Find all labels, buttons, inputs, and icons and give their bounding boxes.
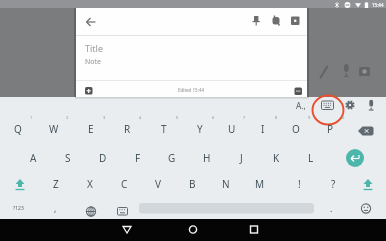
button[interactable]: S (51, 144, 85, 171)
button[interactable] (247, 11, 265, 29)
staticText: G (168, 151, 176, 165)
staticText: ? (331, 177, 336, 191)
staticText: 8 (275, 115, 278, 120)
button[interactable]: M (243, 171, 277, 197)
button[interactable]: . (320, 197, 342, 219)
staticText: L (308, 151, 314, 165)
button[interactable] (342, 98, 360, 113)
staticText: Q (14, 122, 22, 136)
button[interactable]: Title (85, 41, 205, 54)
button[interactable]: B (175, 171, 209, 197)
staticText: T (161, 122, 167, 136)
button[interactable] (356, 173, 380, 195)
button[interactable]: Q (1, 114, 35, 144)
staticText: R (124, 122, 131, 136)
staticText: Z (53, 177, 59, 191)
staticText: A (30, 151, 37, 165)
staticText: P (327, 122, 334, 136)
staticText: X (87, 177, 93, 191)
button[interactable] (318, 98, 338, 113)
button[interactable]: ? (316, 171, 350, 197)
button[interactable]: L (294, 144, 328, 171)
button[interactable] (286, 11, 304, 29)
button[interactable] (355, 200, 377, 219)
button[interactable]: P (313, 114, 347, 144)
button[interactable] (363, 98, 379, 113)
button[interactable]: T (147, 114, 181, 144)
button[interactable]: Z (39, 171, 73, 197)
button[interactable] (111, 200, 133, 219)
button[interactable] (8, 173, 32, 195)
button[interactable]: R (110, 114, 144, 144)
button[interactable]: A (16, 144, 50, 171)
staticText: 0 (342, 115, 345, 120)
button[interactable] (290, 83, 306, 97)
button[interactable]: F (121, 144, 155, 171)
button[interactable]: A., (294, 99, 308, 111)
staticText: Y (197, 122, 203, 136)
staticText: C (121, 177, 128, 191)
staticText: J (240, 151, 243, 165)
staticText: N (222, 177, 230, 191)
staticText: H (203, 151, 211, 165)
staticText: M (255, 177, 265, 191)
staticText: F (135, 151, 141, 165)
staticText: 4 (139, 115, 142, 120)
staticText: 3 (103, 115, 106, 120)
staticText: . (330, 202, 333, 214)
button[interactable]: , (44, 197, 66, 219)
staticText: Title (85, 42, 103, 54)
staticText: Edited 15:44 (178, 87, 205, 93)
staticText: ! (298, 177, 301, 191)
button[interactable]: N (209, 171, 243, 197)
button[interactable]: E (74, 114, 108, 144)
button[interactable] (139, 200, 314, 219)
button[interactable] (80, 200, 102, 219)
staticText: B (189, 177, 196, 191)
staticText: 9 (308, 115, 311, 120)
staticText: E (88, 122, 94, 136)
button[interactable] (82, 12, 100, 30)
staticText: D (99, 151, 107, 165)
staticText: K (273, 151, 280, 165)
staticText: O (292, 122, 300, 136)
staticText: 5 (176, 115, 179, 120)
staticText: U (228, 122, 236, 136)
staticText: Note (85, 57, 102, 67)
staticText: 15:44 (372, 2, 384, 8)
staticText: 1 (30, 115, 33, 120)
button[interactable]: W (37, 114, 71, 144)
button[interactable] (352, 120, 378, 142)
staticText: 6 (212, 115, 215, 120)
button[interactable] (80, 83, 96, 97)
button[interactable]: I (246, 114, 280, 144)
staticText: V (155, 177, 161, 191)
button[interactable]: C (107, 171, 141, 197)
button[interactable] (179, 220, 207, 240)
staticText: S (65, 151, 71, 165)
button[interactable]: Note (85, 57, 205, 67)
button[interactable]: K (259, 144, 293, 171)
button[interactable]: ! (282, 171, 316, 197)
button[interactable]: X (73, 171, 107, 197)
button[interactable]: U (215, 114, 249, 144)
staticText: W (49, 122, 59, 136)
button[interactable]: O (279, 114, 313, 144)
staticText: 7 (243, 115, 246, 120)
staticText: A., (296, 100, 306, 111)
button[interactable] (240, 220, 268, 240)
button[interactable] (344, 147, 366, 169)
staticText: I (261, 122, 265, 136)
button[interactable]: D (86, 144, 120, 171)
button[interactable]: V (141, 171, 175, 197)
button[interactable]: ?123 (2, 197, 34, 219)
button[interactable]: G (155, 144, 189, 171)
button[interactable] (267, 11, 285, 29)
button[interactable]: H (190, 144, 224, 171)
staticText: ?123 (13, 205, 24, 212)
button[interactable] (113, 220, 141, 240)
button[interactable]: J (224, 144, 258, 171)
button[interactable]: Y (183, 114, 217, 144)
staticText: , (54, 202, 57, 214)
staticText: 2 (66, 115, 69, 120)
